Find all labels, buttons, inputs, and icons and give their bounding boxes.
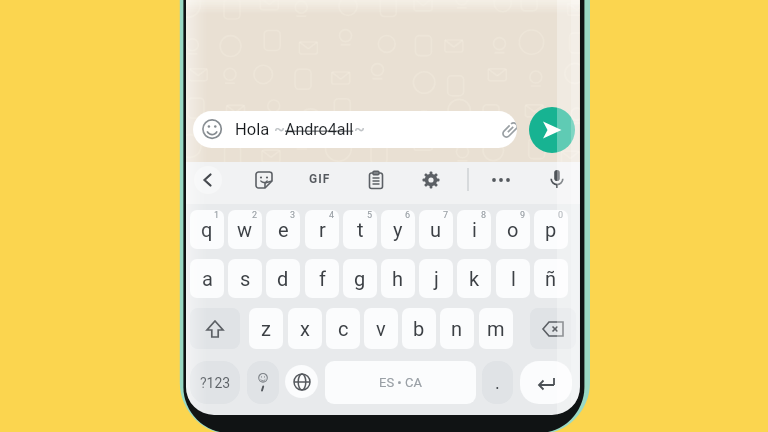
button[interactable]: y: [381, 210, 415, 249]
button[interactable]: Hola: [193, 111, 517, 148]
button[interactable]: e: [266, 210, 300, 249]
button[interactable]: [546, 168, 568, 190]
button[interactable]: r: [305, 210, 339, 249]
staticText: Hola: [235, 120, 274, 139]
button[interactable]: g: [343, 259, 377, 298]
button[interactable]: j: [419, 259, 453, 298]
button[interactable]: i: [457, 210, 491, 249]
staticText: u: [430, 218, 442, 241]
button[interactable]: .: [482, 361, 513, 404]
button[interactable]: l: [496, 259, 530, 298]
button[interactable]: [365, 169, 387, 191]
button[interactable]: [247, 361, 279, 404]
button[interactable]: d: [266, 259, 300, 298]
staticText: w: [237, 218, 253, 241]
staticText: r: [319, 218, 326, 241]
button[interactable]: p: [534, 210, 568, 249]
staticText: 3: [290, 210, 296, 221]
staticText: 1: [214, 210, 220, 221]
button[interactable]: f: [305, 259, 339, 298]
staticText: 8: [481, 210, 487, 221]
staticText: j: [434, 267, 439, 290]
button[interactable]: h: [381, 259, 415, 298]
staticText: l: [511, 267, 516, 290]
staticText: 7: [443, 210, 449, 221]
button[interactable]: m: [479, 308, 513, 349]
staticText: ~: [354, 120, 365, 139]
staticText: c: [338, 317, 349, 340]
button[interactable]: [530, 308, 576, 349]
button[interactable]: n: [440, 308, 474, 349]
staticText: i: [472, 218, 477, 241]
staticText: 2: [252, 210, 258, 221]
staticText: g: [354, 267, 366, 290]
staticText: f: [319, 267, 326, 290]
button[interactable]: [520, 361, 572, 404]
staticText: o: [507, 218, 519, 241]
button[interactable]: [420, 169, 442, 191]
button[interactable]: v: [364, 308, 398, 349]
button[interactable]: o: [496, 210, 530, 249]
staticText: e: [278, 218, 289, 241]
staticText: 9: [520, 210, 526, 221]
staticText: a: [202, 267, 213, 290]
button[interactable]: s: [228, 259, 262, 298]
button[interactable]: t: [343, 210, 377, 249]
button[interactable]: [253, 169, 275, 191]
staticText: ~: [274, 120, 285, 139]
button[interactable]: [529, 107, 575, 153]
staticText: 5: [367, 210, 373, 221]
staticText: z: [261, 317, 271, 340]
button[interactable]: b: [402, 308, 436, 349]
button[interactable]: a: [190, 259, 224, 298]
staticText: Andro4all: [285, 120, 354, 139]
staticText: s: [240, 267, 251, 290]
staticText: 4: [329, 210, 335, 221]
staticText: v: [376, 317, 386, 340]
button[interactable]: q: [190, 210, 224, 249]
staticText: ?123: [200, 375, 231, 391]
staticText: m: [487, 317, 505, 340]
staticText: 6: [405, 210, 411, 221]
button[interactable]: [194, 166, 222, 194]
button[interactable]: w: [228, 210, 262, 249]
button[interactable]: ?123: [190, 361, 240, 404]
button[interactable]: [490, 173, 512, 187]
staticText: ñ: [545, 267, 557, 290]
button[interactable]: z: [249, 308, 283, 349]
staticText: q: [201, 218, 213, 241]
staticText: n: [451, 317, 463, 340]
staticText: b: [413, 317, 425, 340]
button[interactable]: [499, 119, 517, 141]
staticText: .: [495, 372, 500, 393]
staticText: t: [357, 218, 364, 241]
staticText: d: [277, 267, 289, 290]
button[interactable]: ñ: [534, 259, 568, 298]
staticText: k: [469, 267, 480, 290]
staticText: 0: [558, 210, 564, 221]
button[interactable]: ES • CA: [325, 361, 476, 404]
button[interactable]: [190, 308, 240, 349]
button[interactable]: u: [419, 210, 453, 249]
staticText: x: [300, 317, 310, 340]
button[interactable]: c: [326, 308, 360, 349]
button[interactable]: [285, 365, 318, 398]
staticText: GIF: [309, 172, 331, 186]
staticText: y: [393, 218, 403, 241]
staticText: h: [392, 267, 404, 290]
button[interactable]: k: [457, 259, 491, 298]
staticText: p: [545, 218, 557, 241]
staticText: ES • CA: [379, 375, 422, 390]
button[interactable]: GIF: [307, 170, 333, 188]
button[interactable]: x: [288, 308, 322, 349]
